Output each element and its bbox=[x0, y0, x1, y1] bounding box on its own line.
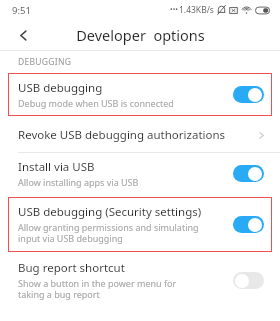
button[interactable]: Toggle on bbox=[233, 165, 264, 182]
button[interactable]: Install via USB bbox=[18, 153, 264, 194]
staticText: Bug report shortcut bbox=[18, 260, 125, 276]
button[interactable]: USB debugging (Security settings) bbox=[8, 197, 272, 252]
staticText: Debug mode when USB is connected bbox=[18, 97, 174, 109]
staticText: 1.43KB/s bbox=[179, 4, 214, 16]
staticText: ••• bbox=[170, 5, 178, 15]
button[interactable]: Toggle on bbox=[233, 86, 264, 103]
button[interactable]: Toggle off bbox=[233, 272, 264, 289]
staticText: Allow installing apps via USB bbox=[18, 176, 139, 188]
staticText: Install via USB bbox=[18, 159, 95, 175]
button[interactable]: Back bbox=[8, 20, 38, 50]
button[interactable]: Revoke USB debugging authorizations bbox=[0, 118, 280, 152]
staticText: USB debugging bbox=[18, 80, 103, 96]
staticText: USB debugging (Security settings) bbox=[18, 204, 202, 220]
staticText: DEBUGGING bbox=[18, 56, 72, 68]
staticText: Show a button in the power menu for taki… bbox=[18, 277, 177, 301]
staticText: 9:51 bbox=[12, 4, 31, 17]
staticText: Revoke USB debugging authorizations bbox=[18, 127, 257, 143]
button[interactable]: Bug report shortcut bbox=[18, 255, 264, 306]
staticText: Allow granting permissions and simulatin… bbox=[18, 221, 199, 245]
button[interactable]: USB debugging bbox=[8, 73, 272, 116]
button[interactable]: Toggle on bbox=[233, 216, 264, 233]
staticText: Developer options bbox=[76, 25, 205, 45]
